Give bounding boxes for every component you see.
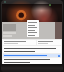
button[interactable] xyxy=(3,40,36,45)
button[interactable] xyxy=(28,29,38,31)
button[interactable] xyxy=(3,54,61,57)
button[interactable] xyxy=(37,40,61,45)
button[interactable] xyxy=(28,26,38,28)
button[interactable] xyxy=(28,21,38,23)
button[interactable] xyxy=(28,24,38,26)
button[interactable] xyxy=(3,50,61,53)
button[interactable] xyxy=(3,46,61,50)
button[interactable] xyxy=(3,61,61,64)
button[interactable] xyxy=(28,31,38,33)
button[interactable] xyxy=(28,34,38,36)
button[interactable] xyxy=(3,58,61,61)
